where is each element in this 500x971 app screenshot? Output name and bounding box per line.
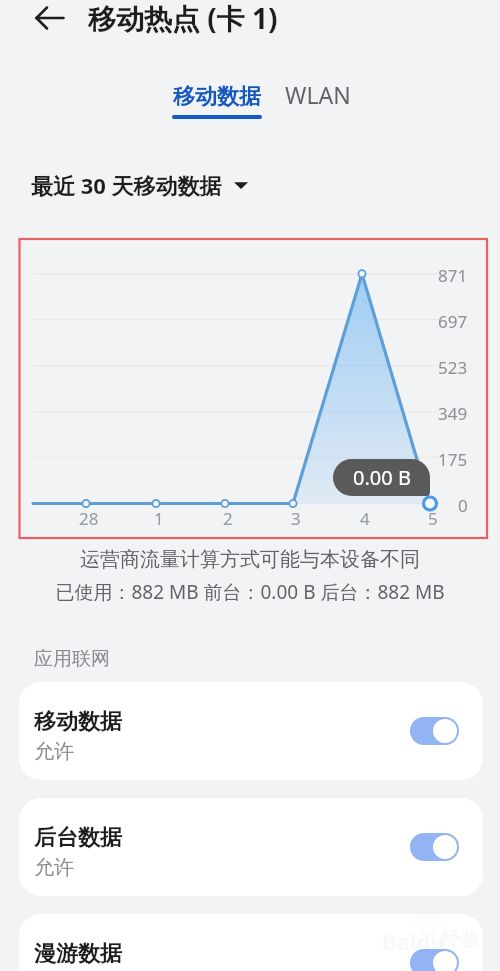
staticText: 523 — [438, 356, 468, 376]
staticText: 0.00 B — [353, 464, 411, 491]
staticText: 5 — [428, 507, 438, 527]
staticText: 移动数据 — [34, 708, 122, 736]
staticText: 4 — [360, 507, 370, 527]
button[interactable]: 移动数据 — [19, 682, 483, 780]
button[interactable]: 后台数据 — [19, 798, 483, 896]
staticText: 2 — [223, 507, 233, 527]
staticText: Baidu — [382, 926, 445, 956]
staticText: 3 — [291, 507, 301, 527]
staticText: 0 — [458, 494, 468, 514]
button[interactable]: Back — [25, 0, 75, 43]
staticText: 经验 — [441, 928, 479, 952]
staticText: 871 — [438, 264, 468, 284]
staticText: 175 — [438, 448, 468, 468]
staticText: 移动数据 — [173, 83, 261, 111]
staticText: 697 — [438, 310, 468, 330]
button[interactable]: 漫游数据 — [19, 914, 483, 971]
staticText: WLAN — [285, 79, 351, 110]
staticText: 移动热点 (卡 1) — [88, 0, 278, 37]
staticText: 漫游数据 — [34, 940, 122, 968]
staticText: 运营商流量计算方式可能与本设备不同 — [0, 547, 500, 572]
staticText: 已使用：882 MB 前台：0.00 B 后台：882 MB — [0, 579, 500, 605]
button[interactable]: 最近 30 天移动数据 — [31, 170, 248, 200]
staticText: 349 — [438, 402, 468, 422]
staticText: 后台数据 — [34, 824, 122, 852]
staticText: 允许 — [34, 855, 74, 880]
button[interactable]: WLAN — [273, 79, 363, 110]
button[interactable] — [410, 949, 459, 971]
staticText: 28 — [79, 507, 99, 527]
staticText: 最近 30 天移动数据 — [31, 170, 222, 200]
button[interactable] — [410, 717, 459, 745]
staticText: 1 — [154, 507, 164, 527]
staticText: 允许 — [34, 739, 74, 764]
staticText: 应用联网 — [34, 647, 110, 671]
button[interactable] — [410, 833, 459, 861]
button[interactable]: 移动数据 — [161, 83, 273, 119]
